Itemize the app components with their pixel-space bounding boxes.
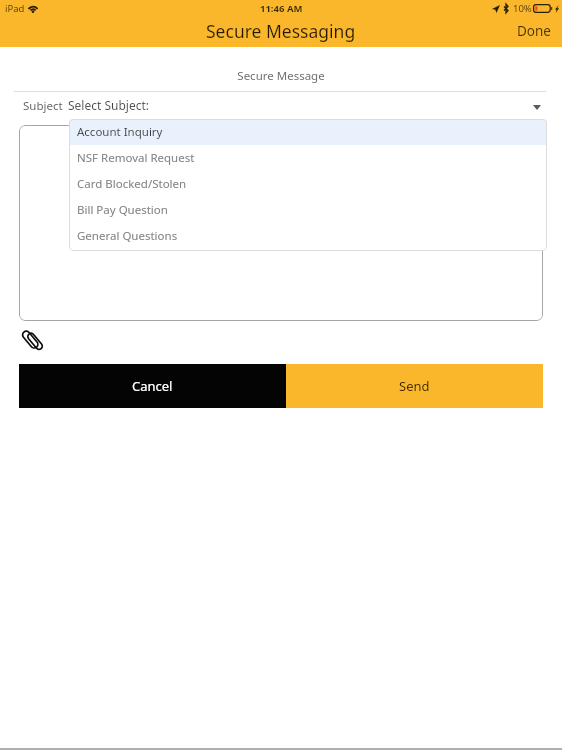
button[interactable]: Send: [286, 364, 543, 408]
staticText: Select Subject:: [68, 97, 149, 113]
other: Open subject list: [528, 99, 545, 116]
staticText: Subject: [23, 98, 63, 114]
staticText: Card Blocked/Stolen: [77, 176, 187, 192]
staticText: iPad: [5, 2, 25, 15]
staticText: Bill Pay Question: [77, 202, 168, 218]
staticText: Secure Message: [0, 68, 562, 84]
staticText: 11:46 AM: [260, 2, 303, 15]
button[interactable]: Select Subject:: [69, 94, 547, 115]
button[interactable]: Card Blocked/Stolen: [69, 171, 547, 197]
staticText: Cancel: [132, 377, 173, 395]
staticText: NSF Removal Request: [77, 150, 195, 166]
staticText: Done: [517, 22, 551, 40]
button[interactable]: Account Inquiry: [69, 119, 547, 145]
button[interactable]: [19, 125, 543, 321]
staticText: Secure Messaging: [206, 19, 356, 43]
button[interactable]: Done: [503, 15, 562, 47]
staticText: 10%: [513, 2, 532, 15]
staticText: Account Inquiry: [77, 124, 163, 140]
staticText: Send: [399, 377, 430, 395]
button[interactable]: General Questions: [69, 223, 547, 249]
staticText: General Questions: [77, 228, 178, 244]
button[interactable]: Attach file: [19, 325, 47, 353]
button[interactable]: Cancel: [19, 364, 286, 408]
button[interactable]: Bill Pay Question: [69, 197, 547, 223]
button[interactable]: NSF Removal Request: [69, 145, 547, 171]
